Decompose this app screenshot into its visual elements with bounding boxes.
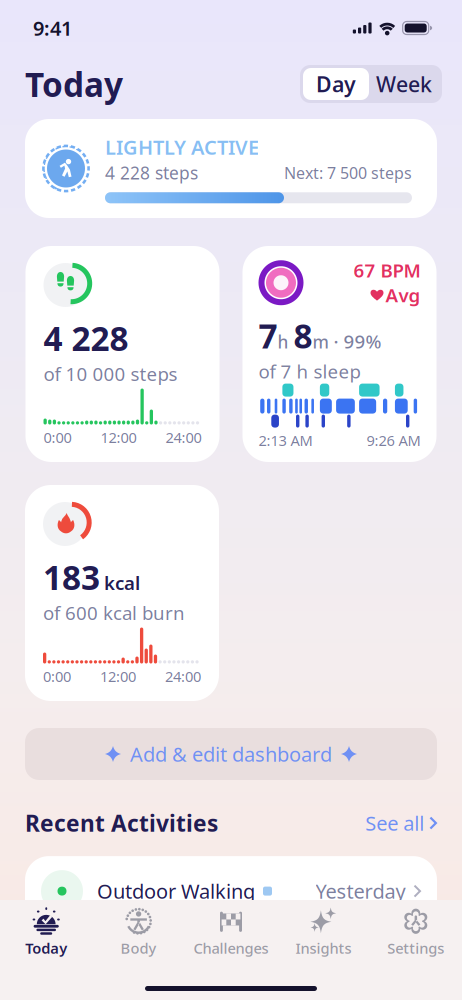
staticText: m xyxy=(312,330,328,353)
staticText: Settings xyxy=(387,938,444,958)
staticText: Week xyxy=(376,70,432,98)
button[interactable]: Challenges xyxy=(185,900,277,964)
staticText: 24:00 xyxy=(165,427,201,447)
button[interactable]: See all xyxy=(365,810,437,836)
staticText: 9:26 AM xyxy=(366,431,420,450)
button[interactable]: Body xyxy=(92,900,185,964)
staticText: 4 228 steps xyxy=(105,161,198,184)
staticText: Today xyxy=(25,938,67,958)
staticText: Day xyxy=(316,70,356,98)
staticText: Yesterday xyxy=(315,878,405,904)
staticText: · 99% xyxy=(328,329,381,354)
staticText: Outdoor Walking xyxy=(97,878,255,904)
button[interactable]: Add & edit dashboard xyxy=(25,728,437,780)
button[interactable]: Week xyxy=(369,68,439,100)
staticText: Today xyxy=(25,62,123,106)
button[interactable]: Settings xyxy=(370,900,462,964)
staticText: LIGHTLY ACTIVE xyxy=(105,134,259,160)
staticText: of 7 h sleep xyxy=(258,359,360,384)
staticText: Challenges xyxy=(193,938,268,958)
staticText: 183 xyxy=(43,555,100,599)
staticText: Avg xyxy=(385,283,420,307)
button[interactable]: Insights xyxy=(277,900,370,964)
staticText: 7 xyxy=(258,313,277,358)
staticText: See all xyxy=(365,810,424,836)
button[interactable]: Outdoor Walking xyxy=(25,856,437,926)
staticText: 24:00 xyxy=(165,666,201,686)
staticText: Add & edit dashboard xyxy=(130,741,332,767)
staticText: 0:00 xyxy=(43,427,71,447)
staticText: 12:00 xyxy=(100,666,136,686)
staticText: kcal xyxy=(104,570,140,595)
staticText: Body xyxy=(121,938,157,958)
staticText: Next: 7 500 steps xyxy=(284,162,412,183)
staticText: 67 BPM xyxy=(353,258,420,283)
staticText: 9:41 xyxy=(33,15,72,41)
staticText: 0:00 xyxy=(43,666,71,686)
staticText: 12:00 xyxy=(100,427,136,447)
staticText: 2:13 AM xyxy=(258,431,312,450)
staticText: 8 xyxy=(293,313,312,358)
staticText: h xyxy=(277,330,293,353)
staticText: of 10 000 steps xyxy=(43,361,177,386)
staticText: 4 228 xyxy=(43,316,128,360)
staticText: Insights xyxy=(295,938,351,958)
button[interactable]: Today xyxy=(0,900,92,964)
button[interactable]: Day xyxy=(303,68,369,100)
staticText: Recent Activities xyxy=(25,808,218,838)
staticText: of 600 kcal burn xyxy=(43,600,185,625)
